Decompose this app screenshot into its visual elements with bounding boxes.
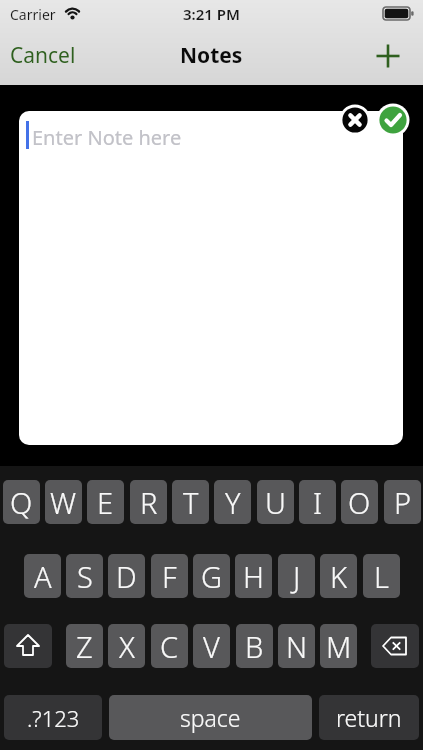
staticText: T xyxy=(183,483,199,522)
button[interactable]: V xyxy=(193,624,230,668)
staticText: Enter Note here xyxy=(32,124,182,151)
staticText: .?123 xyxy=(27,703,80,733)
button[interactable]: G xyxy=(193,554,230,598)
staticText: J xyxy=(293,557,301,596)
staticText: P xyxy=(394,483,412,522)
staticText: O xyxy=(348,483,371,522)
button[interactable] xyxy=(376,103,410,137)
staticText: K xyxy=(330,557,348,596)
staticText: Cancel xyxy=(10,41,76,70)
staticText: U xyxy=(265,483,286,522)
button[interactable]: K xyxy=(320,554,357,598)
button[interactable]: C xyxy=(151,624,188,668)
button[interactable]: A xyxy=(24,554,61,598)
button[interactable]: space xyxy=(109,695,312,740)
button[interactable]: Cancel xyxy=(10,41,76,70)
button[interactable] xyxy=(371,40,405,74)
button[interactable]: U xyxy=(257,480,294,524)
button[interactable]: R xyxy=(130,480,167,524)
staticText: A xyxy=(34,557,52,596)
button[interactable]: B xyxy=(236,624,273,668)
staticText: C xyxy=(160,627,179,666)
button[interactable]: N xyxy=(278,624,315,668)
staticText: V xyxy=(203,627,220,666)
staticText: 3:21 PM xyxy=(183,4,240,24)
staticText: space xyxy=(180,702,241,733)
staticText: Y xyxy=(225,483,241,522)
staticText: Carrier xyxy=(10,5,56,24)
button[interactable]: D xyxy=(108,554,145,598)
staticText: return xyxy=(336,702,402,733)
button[interactable]: E xyxy=(87,480,124,524)
staticText: Q xyxy=(10,483,33,522)
button[interactable]: Y xyxy=(214,480,251,524)
button[interactable]: .?123 xyxy=(4,695,102,740)
button[interactable]: S xyxy=(66,554,103,598)
button[interactable]: X xyxy=(108,624,145,668)
staticText: G xyxy=(201,557,222,596)
staticText: D xyxy=(116,557,137,596)
staticText: Notes xyxy=(180,41,243,70)
button[interactable]: return xyxy=(319,695,419,740)
button[interactable]: Q xyxy=(3,480,40,524)
staticText: N xyxy=(286,627,308,666)
button[interactable]: J xyxy=(278,554,315,598)
button[interactable] xyxy=(339,104,371,136)
staticText: Z xyxy=(76,627,93,666)
button[interactable]: L xyxy=(363,554,400,598)
button[interactable]: O xyxy=(341,480,378,524)
button[interactable]: I xyxy=(299,480,336,524)
staticText: I xyxy=(313,483,323,522)
button[interactable]: P xyxy=(384,480,421,524)
staticText: L xyxy=(374,557,389,596)
staticText: H xyxy=(243,557,264,596)
button[interactable]: F xyxy=(151,554,188,598)
staticText: E xyxy=(97,483,114,522)
button[interactable]: W xyxy=(45,480,82,524)
button[interactable]: T xyxy=(172,480,209,524)
button[interactable]: H xyxy=(235,554,272,598)
staticText: M xyxy=(326,627,352,666)
button[interactable] xyxy=(371,624,419,668)
staticText: B xyxy=(245,627,264,666)
button[interactable]: Z xyxy=(66,624,103,668)
button[interactable] xyxy=(4,624,52,668)
staticText: X xyxy=(119,627,135,666)
staticText: S xyxy=(77,557,93,596)
staticText: R xyxy=(140,483,158,522)
button[interactable]: Enter Note here xyxy=(19,111,403,445)
staticText: F xyxy=(162,557,177,596)
staticText: W xyxy=(50,483,77,522)
button[interactable]: M xyxy=(320,624,357,668)
